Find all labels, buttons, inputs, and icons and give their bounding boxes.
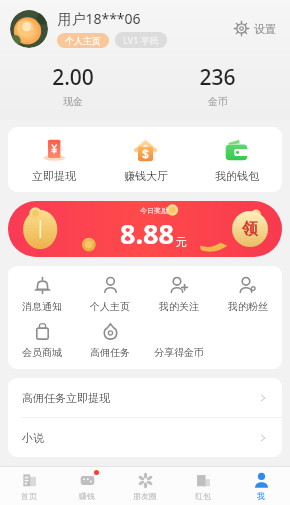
button[interactable]: 设置 (230, 17, 280, 40)
button[interactable]: 高佣任务立即提现 (8, 378, 282, 417)
staticText: 8.88 (120, 215, 174, 252)
staticText: 朋友圈 (133, 491, 157, 501)
staticText: 首页 (21, 491, 37, 501)
staticText: 赚钱大厅 (124, 169, 168, 183)
button[interactable]: 个人主页 (57, 33, 109, 48)
button[interactable]: 会员商城 (8, 322, 76, 359)
staticText: 红包 (195, 491, 211, 501)
staticText: LV1 平民 (123, 34, 159, 46)
staticText: 2.00 (52, 63, 94, 92)
staticText: 立即提现 (32, 169, 76, 183)
button[interactable]: 我的粉丝 (213, 276, 282, 313)
staticText: 高佣任务 (90, 346, 130, 359)
staticText: 高佣任务立即提现 (22, 391, 110, 405)
staticText: 今日奖励 (140, 206, 168, 215)
button[interactable]: 红包 (174, 467, 232, 505)
staticText: 236 (199, 63, 236, 92)
button[interactable]: 高佣任务 (76, 322, 144, 359)
button[interactable]: LV1 平民 (115, 32, 167, 48)
staticText: 元 (176, 235, 187, 249)
button[interactable]: Avatar (10, 10, 48, 48)
staticText: 金币 (208, 95, 228, 108)
button[interactable]: 领取 (232, 211, 268, 247)
staticText: 小说 (22, 431, 44, 445)
button[interactable]: 首页 (0, 467, 58, 505)
button[interactable]: 赚钱大厅 (100, 127, 191, 192)
staticText: 我 (257, 491, 265, 501)
staticText: 消息通知 (22, 300, 62, 313)
staticText: 我的钱包 (215, 169, 259, 183)
staticText: 赚钱 (79, 491, 95, 501)
button[interactable]: 朋友圈 (116, 467, 174, 505)
staticText: 现金 (63, 95, 83, 108)
staticText: 用户18***06 (57, 9, 141, 28)
staticText: 会员商城 (22, 346, 62, 359)
button[interactable]: 立即提现 (8, 127, 100, 192)
staticText: 个人主页 (90, 300, 130, 313)
button[interactable]: 今日奖励 (8, 201, 282, 257)
staticText: 领 (242, 219, 258, 239)
button[interactable]: 2.00 (0, 63, 145, 108)
staticText: 我的粉丝 (228, 300, 268, 313)
button[interactable]: 赚钱 (58, 467, 116, 505)
button[interactable]: 分享得金币 (144, 322, 213, 359)
staticText: 个人主页 (65, 35, 101, 46)
button[interactable]: 我 (232, 467, 290, 505)
button[interactable]: 小说 (8, 418, 282, 457)
staticText: 设置 (254, 22, 276, 36)
button[interactable]: 我的关注 (144, 276, 213, 313)
button[interactable]: 个人主页 (76, 276, 144, 313)
button[interactable]: 消息通知 (8, 276, 76, 313)
button[interactable]: 我的钱包 (191, 127, 282, 192)
staticText: 我的关注 (159, 300, 199, 313)
button[interactable]: 236 (145, 63, 290, 108)
staticText: 分享得金币 (154, 346, 204, 359)
